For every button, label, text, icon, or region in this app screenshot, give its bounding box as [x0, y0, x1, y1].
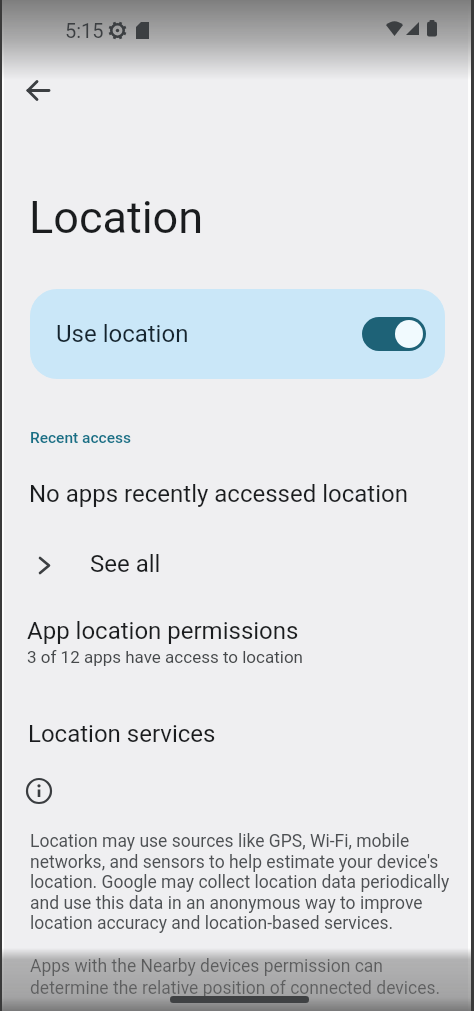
- staticText: Recent access: [30, 429, 132, 447]
- staticText: Use location: [56, 320, 189, 348]
- staticText: networks, and sensors to help estimate y…: [30, 852, 439, 873]
- staticText: Apps with the Nearby devices permission …: [30, 956, 383, 977]
- staticText: and use this data in an anonymous way to…: [30, 893, 423, 914]
- staticText: Location: [29, 191, 204, 244]
- staticText: 5:15: [65, 19, 104, 42]
- staticText: App location permissions: [27, 617, 299, 645]
- staticText: Location may use sources like GPS, Wi-Fi…: [30, 831, 410, 852]
- staticText: 3 of 12 apps have access to location: [27, 647, 303, 667]
- staticText: location accuracy and location-based ser…: [30, 913, 394, 934]
- staticText: No apps recently accessed location: [29, 480, 408, 508]
- staticText: See all: [90, 550, 161, 578]
- staticText: determine the relative position of conne…: [30, 978, 441, 999]
- staticText: Location services: [28, 720, 216, 748]
- staticText: location. Google may collect location da…: [30, 872, 450, 893]
